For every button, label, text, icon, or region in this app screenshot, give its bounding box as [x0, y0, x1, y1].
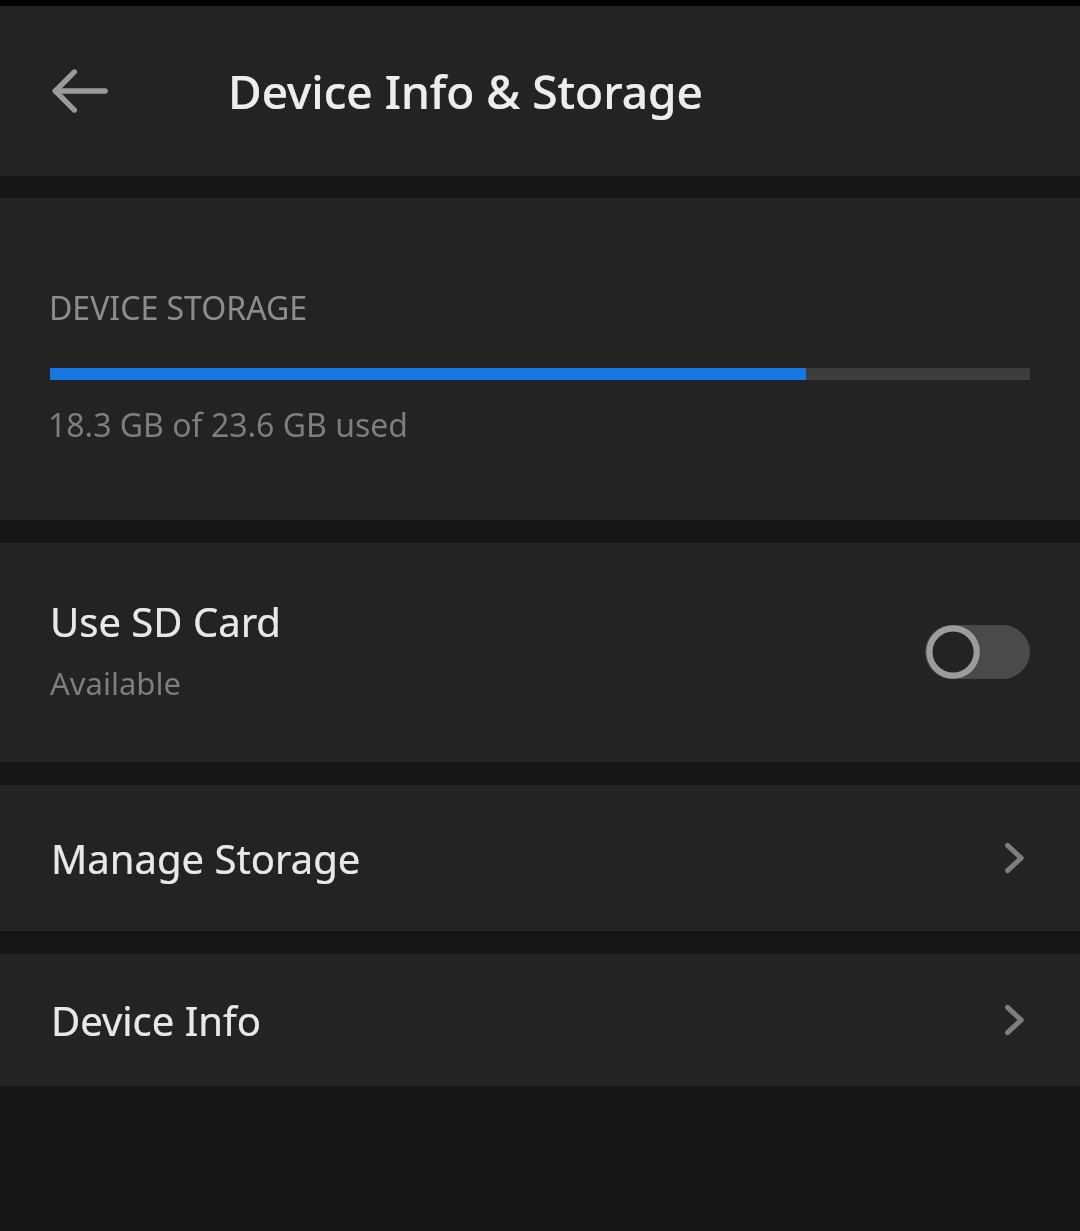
staticText: Available — [50, 662, 181, 704]
button[interactable]: Use SD Card — [0, 543, 1080, 762]
button[interactable]: Use SD Card toggle — [925, 625, 1030, 679]
button[interactable]: Back — [36, 47, 124, 135]
staticText: DEVICE STORAGE — [49, 286, 308, 330]
staticText: Use SD Card — [50, 594, 281, 648]
button[interactable]: Device Info — [0, 954, 1080, 1086]
button[interactable]: Manage Storage — [0, 785, 1080, 931]
staticText: Device Info & Storage — [228, 60, 703, 123]
staticText: Manage Storage — [51, 831, 361, 885]
staticText: 18.3 GB of 23.6 GB used — [48, 403, 408, 447]
staticText: Device Info — [51, 993, 261, 1047]
